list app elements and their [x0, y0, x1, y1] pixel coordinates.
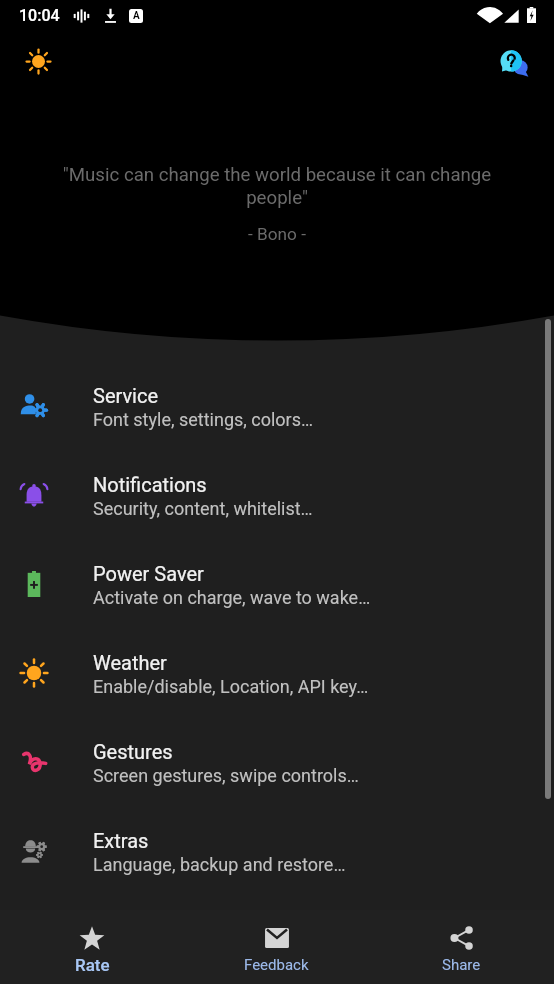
button[interactable]: Gestures: [0, 721, 554, 810]
staticText: Power Saver: [93, 562, 204, 585]
staticText: Gestures: [93, 740, 173, 763]
button[interactable]: Share: [369, 910, 554, 984]
staticText: Extras: [93, 829, 149, 852]
staticText: Language, backup and restore…: [93, 854, 346, 875]
button[interactable]: Notifications: [0, 454, 554, 543]
staticText: Notifications: [93, 473, 207, 496]
button[interactable]: Rate: [0, 910, 184, 984]
button[interactable]: Service: [0, 365, 554, 454]
staticText: Screen gestures, swipe controls…: [93, 765, 359, 786]
button[interactable]: Power Saver: [0, 543, 554, 632]
button[interactable]: Extras: [0, 810, 554, 899]
staticText: - Bono -: [52, 224, 502, 244]
staticText: "Music can change the world because it c…: [52, 164, 502, 209]
staticText: Enable/disable, Location, API key…: [93, 676, 369, 697]
staticText: Weather: [93, 651, 167, 674]
button[interactable]: Toggle theme: [14, 37, 62, 85]
button[interactable]: Help and feedback: [490, 38, 538, 86]
button[interactable]: Feedback: [184, 910, 369, 984]
staticText: 10:04: [19, 6, 60, 25]
staticText: Font style, settings, colors…: [93, 409, 314, 430]
button[interactable]: Weather: [0, 632, 554, 721]
staticText: A: [133, 10, 140, 22]
staticText: Rate: [75, 955, 110, 975]
staticText: Activate on charge, wave to wake…: [93, 587, 371, 608]
staticText: Security, content, whitelist…: [93, 498, 313, 519]
staticText: Share: [442, 956, 481, 974]
staticText: Feedback: [244, 956, 309, 974]
staticText: Service: [93, 384, 159, 407]
